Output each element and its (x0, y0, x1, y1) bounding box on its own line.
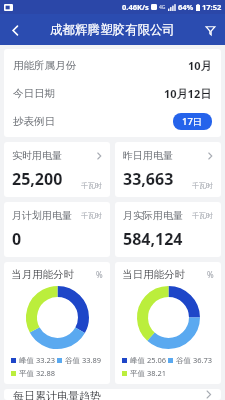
staticText: 月计划用电量 (12, 209, 72, 222)
staticText: 0 (12, 228, 22, 250)
staticText: 17日 (182, 115, 203, 128)
button[interactable]: Back (0, 15, 30, 45)
staticText: 成都辉腾塑胶有限公司 (50, 22, 175, 38)
staticText: 当日用能分时 (122, 268, 185, 281)
staticText: 584,124 (123, 228, 183, 250)
staticText: 实时用电量 (12, 149, 62, 162)
staticText: 每日累计电量趋势 (13, 389, 101, 400)
button[interactable]: Filter (195, 15, 225, 45)
staticText: 当月用能分时 (11, 268, 74, 281)
staticText: 月实际用电量 (123, 209, 183, 222)
button[interactable]: 每日累计电量趋势 (4, 389, 221, 400)
staticText: 17:52 (202, 2, 222, 12)
staticText: 昨日用电量 (123, 149, 173, 162)
staticText: 抄表例日 (13, 115, 55, 128)
button[interactable]: 月计划用电量 (4, 202, 110, 257)
staticText: 25,200 (12, 168, 63, 190)
staticText: % (96, 269, 103, 280)
staticText: 平值 32.88 (19, 368, 56, 378)
button[interactable]: 用能所属月份 (4, 51, 221, 79)
staticText: 用能所属月份 (13, 59, 76, 72)
button[interactable]: 今日日期 (4, 79, 221, 107)
button[interactable]: 17日 (173, 113, 212, 130)
staticText: 10月12日 (164, 86, 212, 101)
staticText: 峰值 33.23 (19, 355, 56, 365)
staticText: 峰值 25.06 (130, 355, 167, 365)
staticText: 64% (178, 2, 194, 12)
button[interactable]: 月实际用电量 (115, 202, 221, 257)
staticText: 4G (159, 4, 166, 11)
staticText: 千瓦时 (81, 181, 102, 190)
staticText: 今日日期 (13, 87, 55, 100)
staticText: 千瓦时 (192, 181, 213, 190)
staticText: 谷值 33.89 (65, 355, 102, 365)
button[interactable]: 抄表例日 (4, 107, 221, 135)
button[interactable]: 当月用能分时 (4, 262, 110, 384)
button[interactable]: 当日用能分时 (115, 262, 221, 384)
staticText: 10月 (188, 58, 212, 73)
staticText: 平值 38.21 (130, 368, 167, 378)
staticText: 千瓦时 (81, 211, 102, 220)
staticText: 千瓦时 (192, 211, 213, 220)
staticText: % (207, 269, 214, 280)
staticText: 33,663 (123, 168, 174, 190)
staticText: 0.46K/s (122, 2, 149, 12)
button[interactable]: 实时用电量 (4, 142, 110, 197)
button[interactable]: 昨日用电量 (115, 142, 221, 197)
staticText: 谷值 36.73 (176, 355, 213, 365)
